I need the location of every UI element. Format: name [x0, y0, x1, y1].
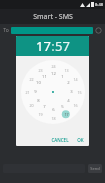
staticText: Send: [90, 166, 100, 171]
staticText: 23: [38, 68, 43, 73]
staticText: CANCEL: [51, 137, 69, 143]
staticText: 10: [36, 80, 41, 86]
staticText: :: [51, 37, 55, 55]
staticText: 18: [51, 116, 56, 121]
staticText: 2: [67, 80, 70, 86]
staticText: 14: [73, 77, 78, 82]
staticText: 6: [52, 107, 55, 113]
staticText: 8:48: [95, 2, 103, 7]
staticText: 7: [43, 104, 46, 110]
staticText: 22: [29, 77, 34, 82]
staticText: 21: [25, 90, 30, 95]
staticText: 3: [70, 89, 73, 95]
staticText: 9: [34, 89, 37, 95]
staticText: 24: [51, 64, 56, 69]
staticText: To: [3, 27, 9, 34]
staticText: 5: [61, 104, 64, 110]
staticText: 8: [37, 98, 40, 104]
button[interactable]: CANCEL: [49, 136, 71, 144]
button[interactable]: 24: [21, 60, 85, 124]
staticText: OK: [77, 137, 84, 143]
staticText: 57: [55, 37, 70, 55]
staticText: 19: [38, 112, 43, 117]
staticText: 17: [36, 37, 51, 55]
staticText: 20: [29, 103, 34, 108]
staticText: 4: [67, 98, 70, 104]
staticText: 15: [77, 90, 82, 95]
staticText: 11: [42, 74, 47, 80]
button[interactable]: Send: [88, 164, 102, 173]
staticText: Smart - SMS: [33, 12, 73, 22]
staticText: 13: [64, 68, 69, 73]
staticText: 16: [73, 103, 78, 108]
staticText: 17: [64, 112, 69, 117]
staticText: 12: [51, 71, 56, 77]
staticText: 1: [61, 74, 64, 80]
button[interactable]: OK: [75, 136, 86, 144]
button[interactable]: Add contact: [95, 27, 102, 34]
